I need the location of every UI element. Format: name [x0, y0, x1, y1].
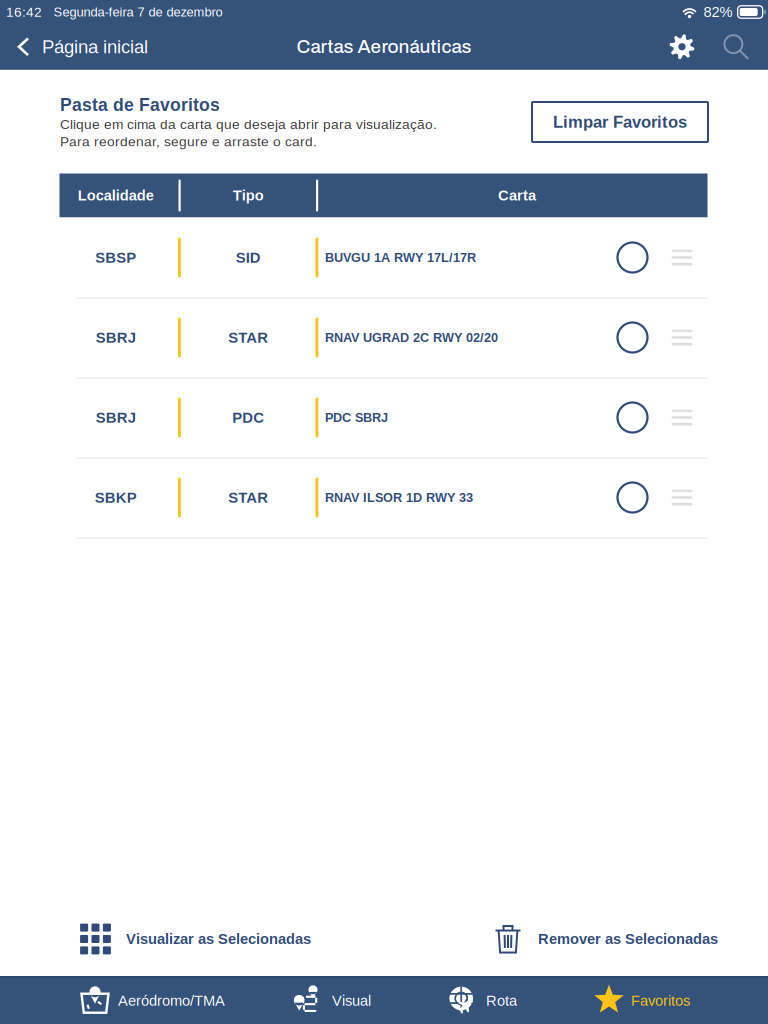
button[interactable]: SBRJ [59, 377, 707, 457]
staticText: STAR [228, 329, 268, 346]
staticText: PDC SBRJ [325, 410, 388, 425]
staticText: Favoritos [631, 993, 690, 1009]
staticText: Para reordenar, segure e arraste o card. [60, 134, 317, 149]
staticText: Segunda-feira 7 de dezembro [53, 5, 222, 19]
staticText: Visual [332, 993, 371, 1009]
staticText: BUVGU 1A RWY 17L/17R [325, 250, 476, 265]
staticText: STAR [228, 489, 268, 506]
staticText: Carta [498, 187, 536, 204]
staticText: Clique em cima da carta que deseja abrir… [60, 117, 437, 132]
staticText: PDC [232, 409, 264, 426]
button[interactable]: Favoritos [0, 0, 768, 1024]
button[interactable]: Limpar Favoritos [532, 102, 708, 142]
staticText: SBRJ [96, 409, 136, 426]
staticText: SBRJ [96, 329, 136, 346]
button[interactable]: Configurações [658, 24, 706, 69]
staticText: Página inicial [42, 36, 148, 57]
button[interactable]: SBRJ [59, 297, 707, 377]
button[interactable]: Visual [0, 0, 768, 1024]
staticText: SBKP [95, 489, 137, 506]
staticText: Rota [486, 993, 517, 1009]
staticText: Cartas Aeronáuticas [296, 36, 471, 57]
button[interactable]: Visualizar as Selecionadas [80, 923, 311, 954]
staticText: Aeródromo/TMA [118, 993, 225, 1009]
staticText: Tipo [233, 187, 264, 204]
staticText: Localidade [78, 187, 154, 204]
staticText: Visualizar as Selecionadas [126, 931, 311, 947]
button[interactable]: Remover as Selecionadas [494, 922, 718, 955]
staticText: 82% [703, 4, 732, 20]
button[interactable]: SBKP [59, 457, 707, 537]
staticText: Remover as Selecionadas [538, 931, 718, 947]
button[interactable]: Buscar [712, 24, 760, 69]
button[interactable]: Página inicial [6, 24, 186, 69]
staticText: 16:42 [6, 4, 42, 20]
staticText: SID [236, 249, 261, 266]
button[interactable]: SBSP [59, 217, 707, 297]
button[interactable]: Rota [0, 0, 768, 1024]
staticText: Limpar Favoritos [553, 113, 687, 131]
staticText: RNAV ILSOR 1D RWY 33 [325, 490, 473, 505]
staticText: Pasta de Favoritos [60, 95, 220, 115]
staticText: RNAV UGRAD 2C RWY 02/20 [325, 330, 498, 345]
staticText: SBSP [95, 249, 136, 266]
button[interactable]: Aeródromo/TMA [0, 0, 768, 1024]
